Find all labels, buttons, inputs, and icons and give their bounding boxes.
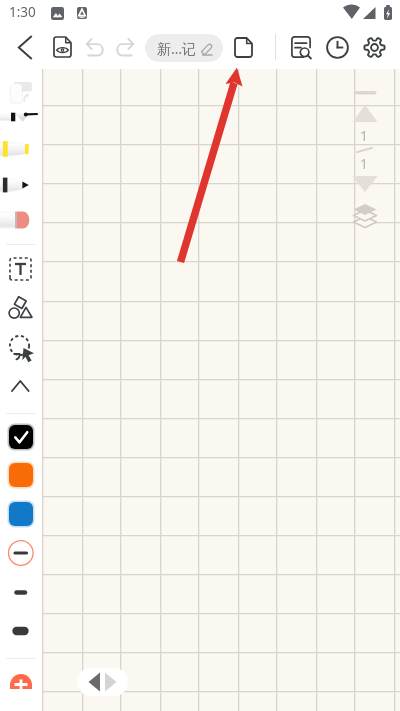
button[interactable]: History	[326, 36, 349, 59]
button[interactable]: Undo	[86, 38, 105, 56]
button[interactable]: Settings	[363, 36, 386, 59]
button[interactable]: Search notes	[291, 36, 311, 58]
button[interactable]: Colour	[9, 425, 33, 449]
button[interactable]: Stroke width large	[0, 616, 42, 648]
button[interactable]: Add	[10, 674, 32, 689]
button[interactable]: Preview	[53, 36, 72, 58]
button[interactable]: Eraser	[0, 208, 42, 232]
button[interactable]: Previous or next page	[77, 668, 128, 696]
button[interactable]: Fountain pen	[0, 106, 42, 128]
staticText: 新…记	[157, 39, 197, 58]
button[interactable]: Stroke width medium	[0, 582, 42, 614]
button[interactable]: Colour	[9, 502, 33, 526]
staticText: 1	[360, 154, 369, 173]
staticText: 1:30	[9, 3, 36, 21]
button[interactable]: Redo	[115, 38, 134, 56]
button[interactable]: Stroke width small	[0, 540, 42, 572]
button[interactable]: New page	[234, 37, 253, 58]
button[interactable]: Shapes	[0, 293, 42, 325]
button[interactable]: Collapse toolbar	[0, 72, 42, 104]
staticText: 1	[360, 126, 369, 145]
button[interactable]: Page navigator	[350, 88, 380, 230]
button[interactable]: 新…记	[145, 34, 223, 62]
button[interactable]: Colour	[9, 463, 33, 487]
button[interactable]: Marker	[0, 173, 42, 197]
button[interactable]: Lasso select	[0, 333, 42, 365]
button[interactable]: Text	[0, 258, 42, 290]
button[interactable]: Back	[17, 36, 35, 59]
button[interactable]: Collapse	[0, 375, 42, 407]
button[interactable]: Highlighter	[0, 137, 42, 161]
